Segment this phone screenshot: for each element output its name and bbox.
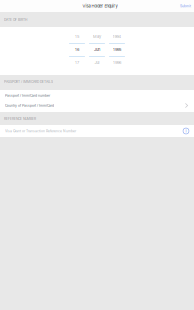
staticText: DATE OF BIRTH (4, 18, 27, 22)
staticText: Country of Passport / ImmiCard (5, 103, 54, 107)
staticText: Submit (180, 4, 191, 8)
staticText: 16 (75, 47, 79, 52)
button[interactable]: Submit (177, 1, 194, 11)
staticText: Visa Grant or Transaction Reference Numb… (5, 129, 76, 133)
staticText: 17 (75, 60, 79, 65)
button[interactable]: Visa Grant or Transaction Reference Numb… (0, 125, 194, 137)
staticText: PASSPORT / IMMICARD DETAILS (4, 80, 53, 84)
staticText: REFERENCE NUMBER (4, 117, 36, 121)
staticText: Visa Holder Enquiry (82, 3, 117, 8)
button[interactable]: Country of Passport / ImmiCard (0, 101, 194, 110)
staticText: May (93, 34, 101, 39)
button[interactable]: Passport / ImmiCard number (0, 90, 194, 101)
staticText: 1995 (113, 47, 121, 52)
staticText: 1994 (112, 34, 121, 39)
staticText: Jul (94, 60, 99, 65)
staticText: 1996 (113, 60, 121, 65)
staticText: Passport / ImmiCard number (5, 93, 50, 97)
staticText: Jun (94, 47, 100, 52)
staticText: 15 (75, 34, 79, 39)
